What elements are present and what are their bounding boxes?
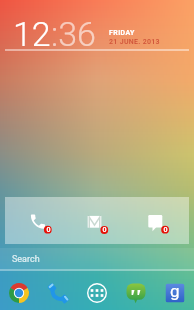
staticText: 21 JUNE. 2013 <box>109 38 160 46</box>
button[interactable]: Phone <box>5 197 67 244</box>
staticText: g <box>170 281 180 301</box>
button[interactable]: Phone <box>38 274 77 310</box>
staticText: 0 <box>102 226 107 234</box>
button[interactable]: Chrome <box>0 274 38 310</box>
staticText: FRIDAY <box>109 29 135 37</box>
staticText: 12 <box>13 14 51 54</box>
staticText: 0 <box>46 226 51 234</box>
button[interactable]: Google Search <box>155 274 194 310</box>
staticText: Search <box>12 254 40 265</box>
staticText: :36 <box>51 14 96 54</box>
button[interactable]: Messages <box>128 197 189 244</box>
button[interactable]: Search <box>0 248 194 271</box>
button[interactable]: Hangouts <box>116 274 155 310</box>
button[interactable]: Apps <box>77 274 116 310</box>
button[interactable]: Gmail <box>67 197 128 244</box>
button[interactable]: 12 <box>0 0 194 52</box>
staticText: 0 <box>163 226 168 234</box>
